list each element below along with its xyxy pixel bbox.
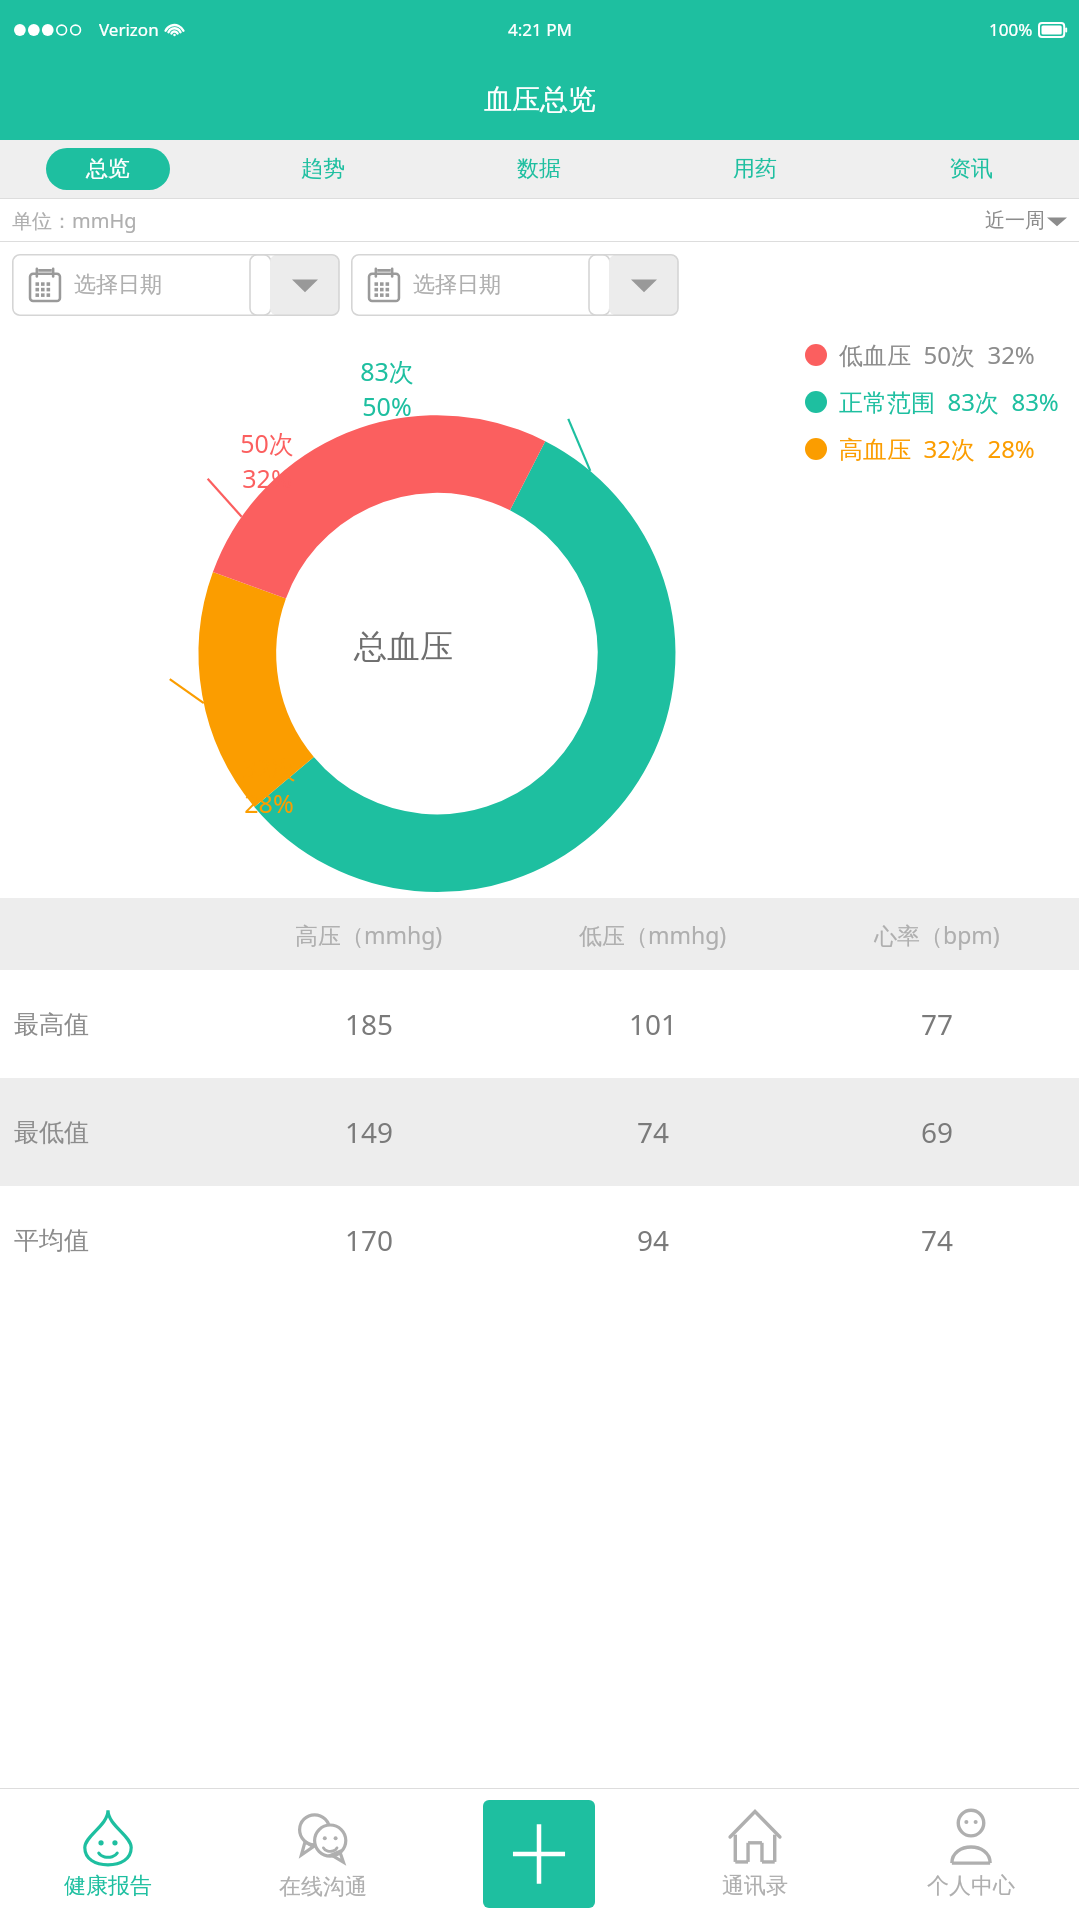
button[interactable]: 通讯录 — [647, 1788, 863, 1920]
button[interactable]: 近一周 — [985, 208, 1067, 233]
staticText: 数据 — [517, 155, 561, 183]
staticText: 170 — [345, 1221, 394, 1259]
staticText: 100% — [989, 18, 1033, 41]
staticText: 149 — [345, 1113, 394, 1151]
staticText: 用药 — [733, 155, 777, 183]
staticText: 选择日期 — [74, 271, 162, 299]
staticText: 正常范围 83次 83% — [839, 385, 1059, 418]
button[interactable]: Add — [483, 1800, 595, 1908]
staticText: 最低值 — [14, 1117, 89, 1148]
staticText: 资讯 — [949, 155, 993, 183]
staticText: 74 — [921, 1221, 954, 1259]
staticText: 32次 28% — [242, 751, 296, 820]
button[interactable]: 最高值 — [0, 970, 1079, 1078]
button[interactable]: 数据 — [484, 148, 594, 190]
button[interactable]: 最低值 — [0, 1078, 1079, 1186]
staticText: 个人中心 — [927, 1872, 1015, 1900]
button[interactable]: 选择日期 — [12, 254, 340, 316]
staticText: 趋势 — [301, 155, 345, 183]
staticText: 高血压 32次 28% — [839, 432, 1035, 465]
staticText: 94 — [637, 1221, 670, 1259]
staticText: 心率（bpm) — [874, 919, 1000, 950]
staticText: 通讯录 — [722, 1872, 788, 1900]
button[interactable]: 趋势 — [268, 148, 378, 190]
staticText: 低血压 50次 32% — [839, 338, 1035, 371]
staticText: 4:21 PM — [508, 18, 572, 41]
button[interactable]: 在线沟通 — [215, 1788, 431, 1920]
staticText: Verizon — [99, 18, 159, 41]
staticText: 总血压 — [354, 626, 453, 668]
button[interactable]: 高血压 32次 28% — [805, 432, 1035, 465]
button[interactable]: 平均值 — [0, 1186, 1079, 1294]
button[interactable]: 个人中心 — [863, 1788, 1079, 1920]
staticText: 总览 — [86, 155, 130, 183]
staticText: 健康报告 — [64, 1872, 152, 1900]
staticText: 74 — [637, 1113, 670, 1151]
staticText: 最高值 — [14, 1009, 89, 1040]
staticText: 83次 50% — [360, 354, 414, 423]
button[interactable]: 低血压 50次 32% — [805, 338, 1035, 371]
staticText: 77 — [921, 1005, 954, 1043]
staticText: 高压（mmhg) — [295, 919, 443, 950]
staticText: 选择日期 — [413, 271, 501, 299]
button[interactable]: 用药 — [700, 148, 810, 190]
button[interactable]: 健康报告 — [0, 1788, 215, 1920]
button[interactable]: 选择日期 — [351, 254, 679, 316]
staticText: 185 — [345, 1005, 394, 1043]
staticText: 近一周 — [985, 208, 1045, 233]
staticText: 血压总览 — [484, 82, 596, 117]
staticText: 50次 32% — [240, 426, 294, 495]
button[interactable]: 总览 — [46, 148, 170, 190]
staticText: 在线沟通 — [279, 1873, 367, 1901]
staticText: 101 — [629, 1005, 678, 1043]
staticText: 低压（mmhg) — [579, 919, 727, 950]
button[interactable]: 资讯 — [916, 148, 1026, 190]
button[interactable]: 正常范围 83次 83% — [805, 385, 1059, 418]
staticText: 单位：mmHg — [12, 207, 137, 234]
staticText: 69 — [921, 1113, 954, 1151]
staticText: 平均值 — [14, 1225, 89, 1256]
